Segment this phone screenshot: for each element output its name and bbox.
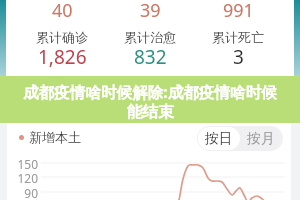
staticText: 90 <box>7 185 38 200</box>
button[interactable]: 40 <box>18 0 106 76</box>
button[interactable]: 39 <box>106 0 194 76</box>
staticText: 991 <box>223 0 254 23</box>
staticText: 按日 <box>205 130 233 147</box>
button[interactable]: 按月 <box>240 127 282 150</box>
button[interactable]: 按日 <box>198 127 240 150</box>
staticText: 新增本土 <box>29 129 81 145</box>
staticText: 累计治愈 <box>124 29 176 45</box>
staticText: 120 <box>7 170 38 186</box>
staticText: 40 <box>52 0 73 23</box>
staticText: 累计死亡 <box>212 29 264 45</box>
staticText: 成都疫情啥时候解除:成都疫情啥时候 <box>23 81 277 102</box>
staticText: 累计确诊 <box>36 29 88 45</box>
staticText: 3 <box>233 44 244 70</box>
staticText: 150 <box>7 156 38 172</box>
staticText: 39 <box>140 0 161 23</box>
staticText: 按月 <box>247 130 275 147</box>
button[interactable]: 991 <box>194 0 282 76</box>
staticText: 能结束 <box>127 102 174 122</box>
staticText: 832 <box>134 44 167 70</box>
staticText: 1,826 <box>38 44 87 70</box>
